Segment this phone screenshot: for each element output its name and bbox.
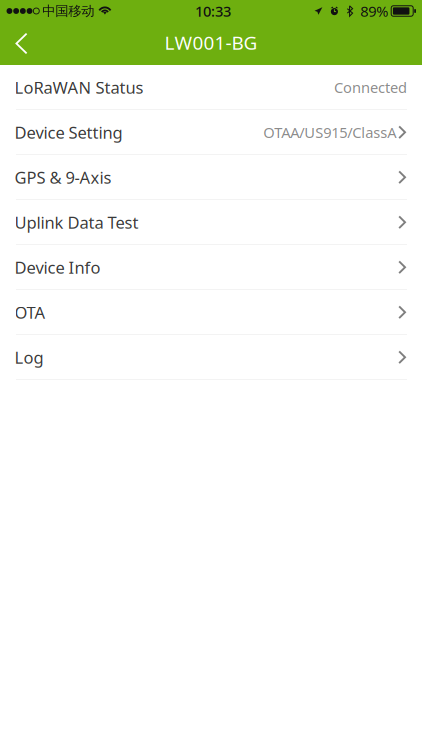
button[interactable]: LoRaWAN Status (0, 65, 422, 110)
button[interactable]: Back (0, 22, 47, 65)
staticText: OTAA/US915/ClassA (263, 122, 396, 142)
button[interactable]: OTA (0, 290, 422, 335)
staticText: Log (14, 346, 43, 368)
staticText: Connected (334, 77, 407, 97)
staticText: LoRaWAN Status (14, 76, 143, 98)
staticText: GPS & 9-Axis (14, 166, 111, 188)
button[interactable]: Uplink Data Test (0, 200, 422, 245)
staticText: Device Setting (14, 121, 122, 143)
staticText: 89% (360, 1, 388, 21)
staticText: 10:33 (195, 1, 231, 21)
button[interactable]: Device Setting (0, 110, 422, 155)
staticText: Device Info (14, 256, 100, 278)
staticText: Uplink Data Test (14, 211, 138, 233)
staticText: OTA (14, 301, 45, 323)
staticText: LW001-BG (164, 30, 257, 55)
button[interactable]: Log (0, 335, 422, 380)
staticText: 中国移动 (42, 3, 94, 19)
button[interactable]: Device Info (0, 245, 422, 290)
button[interactable]: GPS & 9-Axis (0, 155, 422, 200)
